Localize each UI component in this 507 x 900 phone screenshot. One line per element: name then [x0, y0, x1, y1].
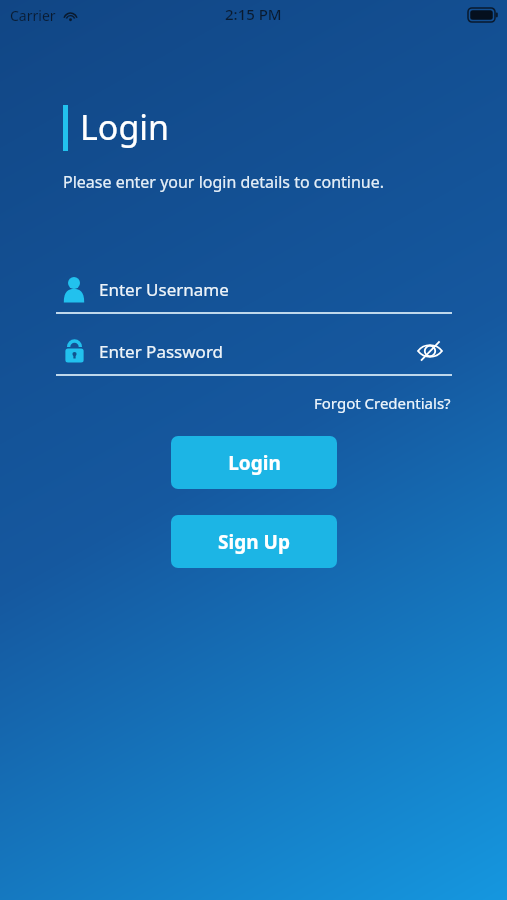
button[interactable]: Login	[171, 436, 337, 489]
button[interactable]: Forgot Credentials?	[314, 393, 451, 413]
button[interactable]: Show password	[410, 331, 450, 371]
staticText: Forgot Credentials?	[314, 393, 451, 413]
staticText: Enter Password	[99, 340, 224, 363]
button[interactable]: Enter Username	[56, 264, 452, 314]
staticText: 2:15 PM	[225, 4, 282, 24]
staticText: Enter Username	[99, 278, 229, 301]
button[interactable]: Sign Up	[171, 515, 337, 568]
button[interactable]: Enter Password	[56, 326, 452, 376]
staticText: Login	[228, 450, 281, 476]
staticText: Please enter your login details to conti…	[63, 171, 385, 193]
staticText: Carrier	[10, 6, 56, 25]
staticText: Sign Up	[218, 529, 290, 555]
staticText: Login	[80, 104, 170, 150]
